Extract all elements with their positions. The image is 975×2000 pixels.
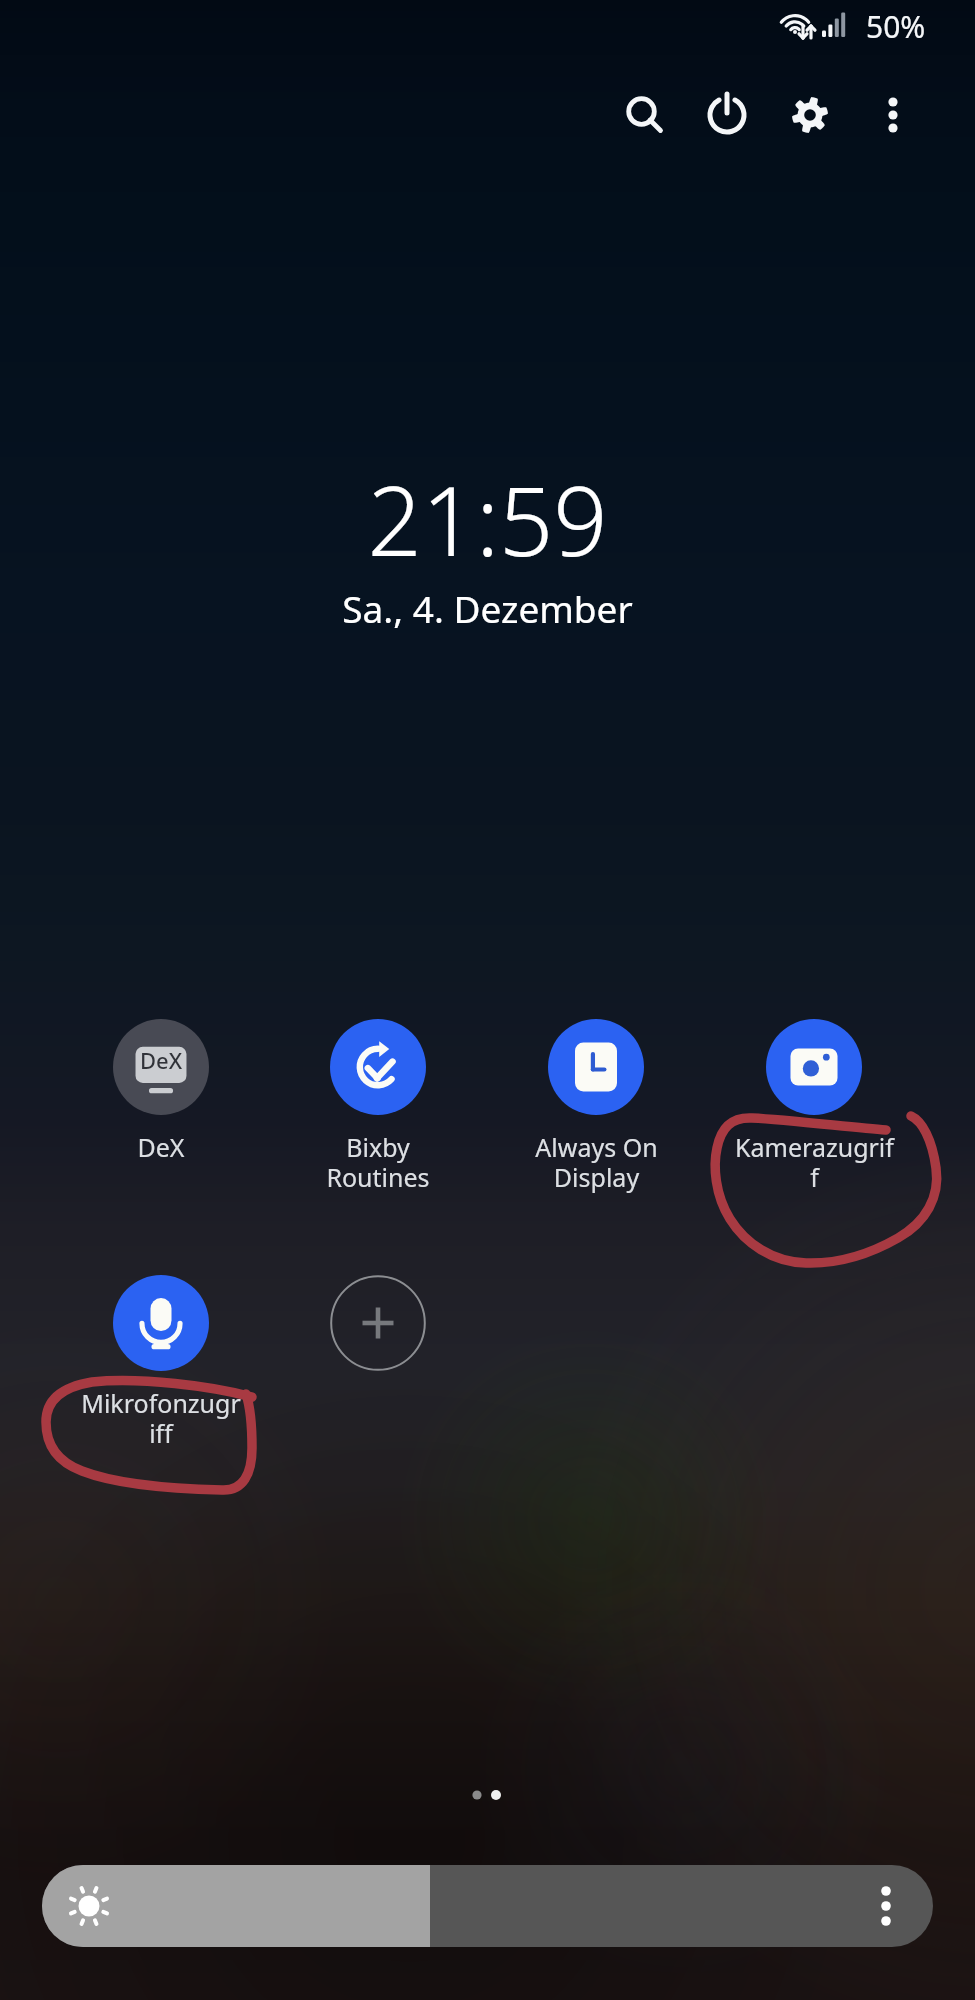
staticText: Mikrofonzugr iff <box>81 1386 241 1450</box>
button[interactable]: Add <box>269 1275 487 1371</box>
button[interactable]: Brightness <box>42 1865 933 1947</box>
staticText: DeX <box>137 1130 185 1164</box>
button[interactable]: Power off <box>699 87 755 143</box>
staticText: 21:59 <box>367 454 608 583</box>
staticText: Sa., 4. Dezember <box>342 583 633 633</box>
staticText: DeX <box>140 1045 183 1075</box>
staticText: 50% <box>866 6 926 47</box>
button[interactable]: Settings <box>782 87 838 143</box>
button[interactable]: Bixby Routines <box>269 1019 487 1194</box>
staticText: Always On Display <box>535 1130 658 1194</box>
button[interactable]: Mikrofonzugr iff <box>52 1275 269 1450</box>
staticText: Bixby Routines <box>326 1130 430 1194</box>
staticText: Kamerazugrif f <box>735 1130 894 1194</box>
button[interactable]: DeX <box>52 1019 269 1164</box>
button[interactable]: Always On Display <box>487 1019 705 1194</box>
button[interactable]: Kamerazugrif f <box>705 1019 923 1194</box>
button[interactable]: Search <box>617 87 673 143</box>
button[interactable]: More options <box>865 87 921 143</box>
